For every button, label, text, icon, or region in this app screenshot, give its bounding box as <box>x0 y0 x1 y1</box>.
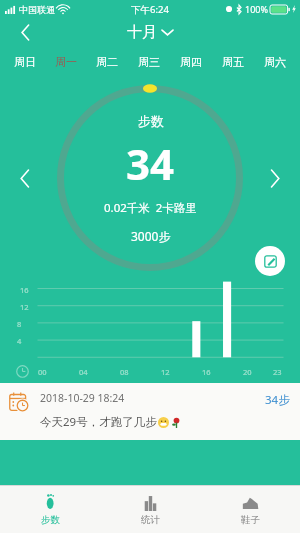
staticText: 34步 <box>265 392 290 408</box>
staticText: 00 <box>38 367 47 377</box>
button[interactable]: 周一 <box>45 46 86 78</box>
button[interactable]: 周日 <box>4 46 45 78</box>
staticText: 8 <box>17 319 22 329</box>
staticText: 周日 <box>14 55 36 69</box>
button[interactable]: 周六 <box>254 46 296 78</box>
staticText: 周二 <box>96 55 118 69</box>
staticText: 中国联通 <box>19 4 55 15</box>
staticText: 0.02千米 2卡路里 <box>104 200 197 216</box>
staticText: 2018-10-29 18:24 <box>40 391 125 405</box>
staticText: 100% <box>245 3 268 15</box>
button[interactable]: 周五 <box>212 46 254 78</box>
staticText: 鞋子 <box>241 514 260 526</box>
staticText: 今天29号，才跑了几步 <box>40 414 157 430</box>
button[interactable]: 步数 <box>0 486 100 533</box>
button[interactable]: Next day <box>258 161 292 195</box>
button[interactable]: 周三 <box>128 46 170 78</box>
staticText: 23 <box>273 367 282 377</box>
button[interactable]: 统计 <box>100 486 200 533</box>
staticText: 16 <box>20 285 29 295</box>
staticText: 34 <box>126 135 175 192</box>
staticText: 周一 <box>55 55 77 69</box>
staticText: 周五 <box>222 55 244 69</box>
staticText: 周四 <box>180 55 202 69</box>
staticText: 统计 <box>141 514 160 526</box>
staticText: 步数 <box>41 514 60 526</box>
staticText: 08 <box>120 367 129 377</box>
button[interactable]: Back <box>8 18 42 46</box>
staticText: 12 <box>161 367 170 377</box>
staticText: 20 <box>243 367 252 377</box>
button[interactable]: 2018-10-29 18:24 <box>0 383 300 440</box>
button[interactable]: Previous day <box>8 161 42 195</box>
button[interactable]: 十月 <box>127 23 173 42</box>
button[interactable]: 周四 <box>170 46 212 78</box>
staticText: 3000步 <box>131 228 171 244</box>
staticText: 16 <box>202 367 211 377</box>
staticText: 步数 <box>138 113 164 129</box>
button[interactable]: 周二 <box>86 46 128 78</box>
staticText: 周三 <box>138 55 160 69</box>
staticText: 4 <box>17 336 22 346</box>
button[interactable]: Edit note <box>255 246 285 276</box>
button[interactable]: 鞋子 <box>200 486 300 533</box>
staticText: 04 <box>79 367 88 377</box>
staticText: 下午6:24 <box>131 3 169 16</box>
staticText: 十月 <box>127 23 157 42</box>
staticText: 12 <box>20 302 29 312</box>
staticText: 周六 <box>264 55 286 69</box>
